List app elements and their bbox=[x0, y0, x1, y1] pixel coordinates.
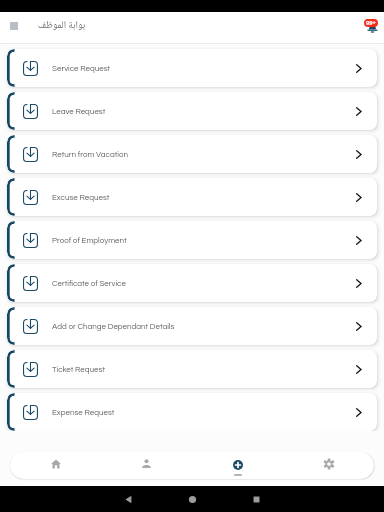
button[interactable]: Ticket Request bbox=[7, 350, 377, 388]
button[interactable]: Home bbox=[10, 452, 101, 479]
button[interactable]: Add bbox=[192, 452, 283, 479]
staticText: Expense Request bbox=[52, 408, 115, 416]
button[interactable]: Profile bbox=[101, 452, 192, 479]
button[interactable]: Notifications bbox=[358, 17, 380, 39]
staticText: Leave Request bbox=[52, 107, 106, 115]
button[interactable]: Excuse Request bbox=[7, 178, 377, 216]
staticText: Certificate of Service bbox=[52, 279, 126, 287]
button[interactable]: Expense Request bbox=[7, 393, 377, 431]
button[interactable]: Service Request bbox=[7, 49, 377, 87]
button[interactable]: Leave Request bbox=[7, 92, 377, 130]
button[interactable]: Proof of Employment bbox=[7, 221, 377, 259]
staticText: بوابة الموظف bbox=[38, 17, 86, 34]
button[interactable]: Settings bbox=[283, 452, 374, 479]
button[interactable]: Return from Vacation bbox=[7, 135, 377, 173]
staticText: Return from Vacation bbox=[52, 150, 128, 158]
staticText: Excuse Request bbox=[52, 193, 110, 201]
button[interactable]: Certificate of Service bbox=[7, 264, 377, 302]
staticText: Add or Change Dependant Details bbox=[52, 322, 175, 330]
staticText: Proof of Employment bbox=[52, 236, 127, 244]
staticText: 99+ bbox=[366, 19, 376, 27]
button[interactable]: Add or Change Dependant Details bbox=[7, 307, 377, 345]
staticText: Ticket Request bbox=[52, 365, 106, 373]
staticText: Service Request bbox=[52, 64, 111, 72]
